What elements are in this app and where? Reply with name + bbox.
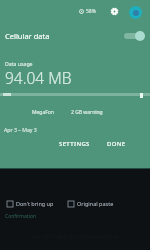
other: Settings [111, 8, 118, 15]
staticText: Don't bring up [16, 200, 54, 207]
staticText: Original paste [77, 200, 114, 207]
staticText: Cellular data [5, 31, 50, 41]
button[interactable]: Cellular data toggle [123, 29, 145, 43]
staticText: 58% [86, 8, 96, 15]
staticText: Confirmation [5, 213, 37, 220]
staticText: SETTINGS [59, 140, 90, 148]
button[interactable]: Don't bring up [7, 200, 54, 207]
staticText: DONE [107, 140, 126, 148]
button[interactable]: Account [129, 6, 142, 19]
button[interactable]: Original paste [68, 200, 114, 207]
button[interactable]: SETTINGS [54, 138, 95, 150]
staticText: 94.04 MB [5, 67, 72, 88]
button[interactable]: DONE [102, 138, 131, 150]
staticText: Apr 3 – May 3 [4, 126, 37, 133]
staticText: Data usage [5, 60, 33, 67]
staticText: MegaFon [32, 109, 54, 116]
other: Alarm [79, 9, 84, 14]
staticText: 2 GB warning [71, 109, 103, 116]
